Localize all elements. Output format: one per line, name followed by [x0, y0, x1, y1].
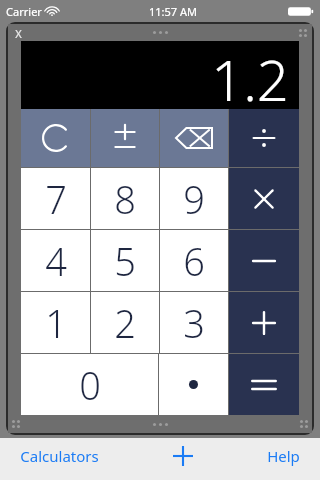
button[interactable]: 2	[91, 292, 159, 353]
button[interactable]: Calculators	[16, 442, 103, 470]
button[interactable]: Close	[13, 24, 24, 41]
button[interactable]: Add calculator	[169, 442, 197, 470]
button[interactable]: 0	[21, 354, 158, 415]
button[interactable]: Decimal point	[159, 354, 228, 415]
staticText: 1	[45, 297, 67, 349]
staticText: 6	[183, 235, 205, 287]
staticText: 4	[45, 235, 67, 287]
staticText: Calculators	[20, 446, 99, 466]
staticText: 7	[45, 173, 67, 225]
button[interactable]: Operator	[229, 292, 299, 353]
button[interactable]: Plus minus	[91, 109, 159, 167]
button[interactable]: 8	[91, 168, 159, 229]
staticText: Carrier	[6, 4, 42, 19]
button[interactable]: 5	[91, 230, 159, 291]
staticText: 9	[183, 173, 205, 225]
staticText: 11:57 AM	[149, 4, 197, 19]
staticText: 1.2	[211, 41, 289, 105]
staticText: 8	[114, 173, 136, 225]
staticText: Help	[267, 446, 300, 466]
button[interactable]: Divide	[229, 109, 299, 167]
button[interactable]: Equals	[229, 354, 299, 415]
button[interactable]: 9	[160, 168, 228, 229]
button[interactable]: 6	[160, 230, 228, 291]
button[interactable]: Clear	[21, 109, 90, 167]
staticText: 2	[114, 297, 136, 349]
button[interactable]: Operator	[229, 230, 299, 291]
button[interactable]: 4	[21, 230, 90, 291]
button[interactable]: Operator	[229, 168, 299, 229]
staticText: 0	[79, 359, 101, 411]
button[interactable]: Delete	[160, 109, 228, 167]
staticText: 5	[114, 235, 136, 287]
button[interactable]: 1	[21, 292, 90, 353]
staticText: X	[15, 26, 22, 39]
button[interactable]: Help	[263, 442, 304, 470]
button[interactable]: 3	[160, 292, 228, 353]
button[interactable]: 7	[21, 168, 90, 229]
staticText: 3	[183, 297, 205, 349]
